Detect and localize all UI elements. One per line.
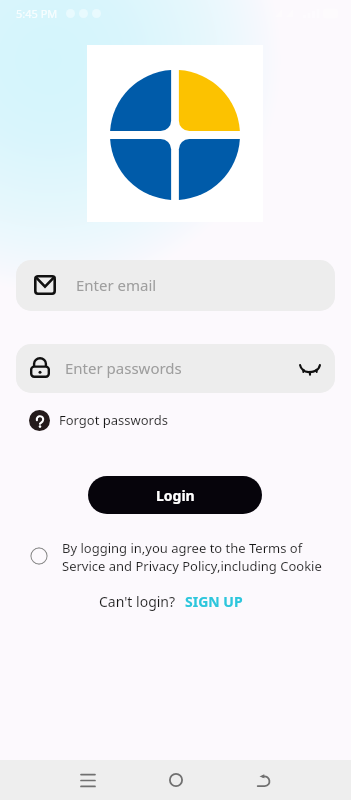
- button[interactable]: SIGN UP: [185, 592, 243, 611]
- button[interactable]: Recents: [65, 760, 110, 800]
- staticText: Login: [156, 486, 195, 505]
- staticText: Forgot passwords: [59, 411, 168, 429]
- button[interactable]: Enter email: [16, 260, 335, 311]
- staticText: Enter email: [76, 275, 157, 295]
- button[interactable]: Home: [153, 760, 198, 800]
- staticText: 5:45 PM: [16, 6, 58, 21]
- button[interactable]: Forgot passwords: [29, 409, 168, 431]
- staticText: SIGN UP: [185, 592, 243, 611]
- button[interactable]: Show password: [297, 361, 323, 379]
- staticText: Enter passwords: [65, 358, 182, 378]
- button[interactable]: Login: [88, 476, 262, 514]
- button[interactable]: Back: [241, 760, 286, 800]
- button[interactable]: Enter passwords: [16, 344, 335, 393]
- staticText: By logging in,you agree to the Terms of …: [62, 539, 324, 575]
- button[interactable]: Accept terms: [30, 547, 48, 565]
- staticText: Can't login?: [99, 592, 176, 611]
